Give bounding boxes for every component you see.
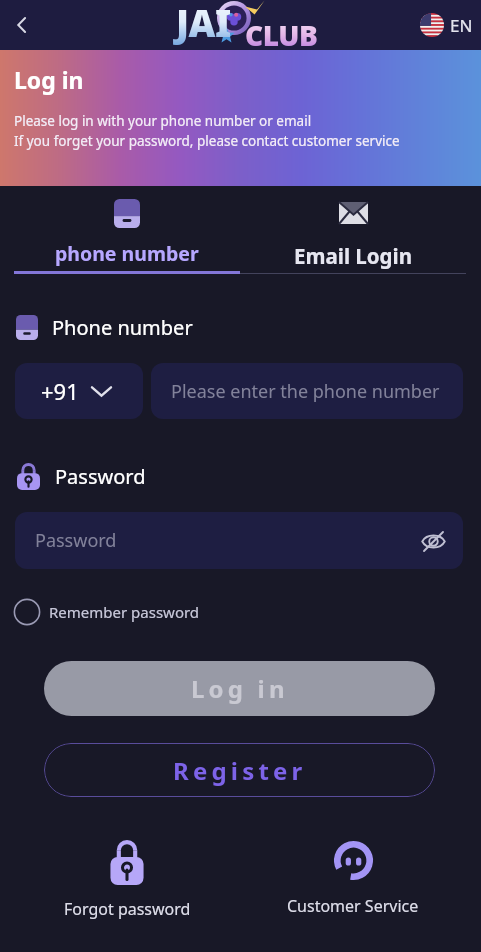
button[interactable]: Log in	[44, 661, 435, 716]
button[interactable]: Remember password	[11, 596, 202, 628]
button[interactable]: Email Login	[240, 186, 466, 270]
button[interactable]: Forgot password	[14, 836, 240, 920]
staticText: +91	[41, 376, 79, 406]
staticText: Password	[55, 463, 146, 490]
button[interactable]: phone number	[14, 186, 240, 267]
staticText: Remember password	[49, 602, 200, 622]
staticText: CLUB	[245, 16, 318, 54]
staticText: Password	[35, 528, 117, 553]
button[interactable]: Show password	[417, 525, 449, 557]
button[interactable]: Please enter the phone number	[151, 363, 463, 419]
staticText: Please enter the phone number	[171, 379, 440, 404]
button[interactable]: Customer Service	[240, 836, 466, 917]
button[interactable]: EN	[420, 13, 473, 37]
staticText: Email Login	[294, 242, 412, 270]
staticText: Customer Service	[287, 895, 419, 917]
staticText: EN	[450, 14, 473, 37]
button[interactable]: Back	[0, 3, 44, 47]
button[interactable]: Password	[15, 512, 463, 569]
staticText: Log in	[191, 672, 289, 705]
button[interactable]: Register	[44, 743, 435, 797]
staticText: If you forget your password, please cont…	[14, 132, 400, 150]
staticText: phone number	[55, 240, 199, 267]
button[interactable]: +91	[15, 363, 143, 419]
staticText: JAI	[176, 0, 231, 47]
staticText: Forgot password	[64, 898, 191, 920]
staticText: Register	[173, 754, 307, 787]
staticText: Log in	[14, 64, 84, 95]
staticText: Please log in with your phone number or …	[14, 112, 312, 130]
staticText: Phone number	[52, 314, 193, 341]
